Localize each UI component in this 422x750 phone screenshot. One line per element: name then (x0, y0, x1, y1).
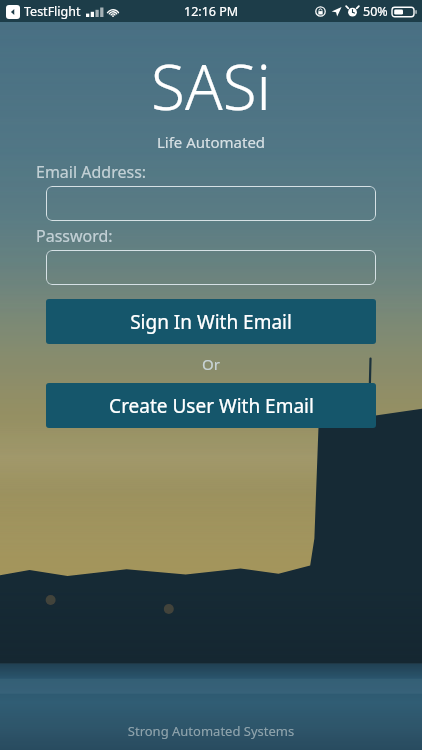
staticText: Strong Automated Systems (0, 722, 422, 740)
button[interactable]: Sign In With Email (46, 299, 376, 344)
staticText: Password: (36, 225, 113, 247)
button[interactable]: Password (46, 250, 376, 285)
button[interactable]: Back to TestFlight (4, 3, 122, 20)
staticText: 12:16 PM (184, 3, 239, 20)
staticText: 50% (363, 3, 388, 20)
staticText: Email Address: (36, 161, 147, 183)
staticText: TestFlight (24, 3, 81, 20)
button[interactable]: Create User With Email (46, 383, 376, 428)
staticText: Sign In With Email (130, 309, 292, 335)
staticText: Create User With Email (109, 393, 314, 419)
staticText: Life Automated (0, 132, 422, 152)
button[interactable]: Email Address (46, 186, 376, 221)
staticText: SASi (0, 44, 422, 128)
staticText: Or (46, 354, 376, 374)
